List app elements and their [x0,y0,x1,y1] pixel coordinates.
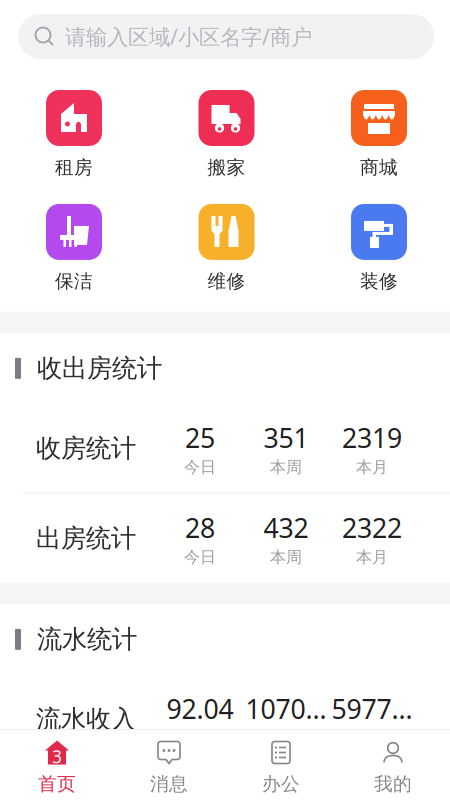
button[interactable]: 我的 [337,729,449,800]
staticText: 收房统计 [36,433,136,464]
staticText: 首页 [38,772,76,795]
staticText: 28 [185,510,215,545]
staticText: 2322 [342,510,402,545]
staticText: 92.04 [166,691,233,726]
staticText: 保洁 [55,270,93,293]
staticText: 本月 [356,457,388,477]
staticText: 维修 [207,270,245,293]
staticText: 装修 [360,270,398,293]
button[interactable]: 保洁 [19,204,129,293]
staticText: 流水统计 [37,624,137,655]
staticText: 25 [185,420,215,455]
staticText: 搬家 [207,156,245,179]
button[interactable]: 商城 [324,90,434,179]
staticText: 消息 [150,772,188,795]
staticText: 商城 [360,156,398,179]
button[interactable]: 请输入区域/小区名字/商户 [18,14,434,59]
button[interactable]: 搬家 [171,90,281,179]
staticText: 本周 [270,547,302,567]
staticText: 351 [263,420,308,455]
button[interactable]: 维修 [171,204,281,293]
staticText: 我的 [374,772,412,795]
button[interactable]: 租房 [19,90,129,179]
staticText: 流水收入 [36,704,136,735]
staticText: 432 [263,510,308,545]
button[interactable]: 办公 [225,729,337,800]
staticText: 收出房统计 [37,353,162,384]
staticText: 3 [52,745,62,768]
staticText: 今日 [184,457,216,477]
staticText: 2319 [342,420,402,455]
staticText: 请输入区域/小区名字/商户 [65,22,312,51]
staticText: 本周 [270,457,302,477]
button[interactable]: 消息 [113,729,225,800]
button[interactable]: 3 [1,729,113,800]
staticText: 5977… [331,691,412,726]
staticText: 今日 [184,728,216,748]
staticText: 今日 [184,547,216,567]
staticText: 租房 [55,156,93,179]
button[interactable]: 装修 [324,204,434,293]
staticText: 1070… [245,691,326,726]
staticText: 出房统计 [36,523,136,554]
staticText: 办公 [262,772,300,795]
staticText: 本月 [356,547,388,567]
staticText: 本周 [270,728,302,748]
staticText: 本月 [356,728,388,748]
